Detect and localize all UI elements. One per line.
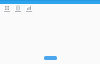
button[interactable]: Reports (24, 5, 33, 14)
button[interactable]: Dashboard (2, 5, 11, 14)
button[interactable]: Documents (13, 5, 22, 14)
button[interactable]: Continue (44, 56, 57, 60)
